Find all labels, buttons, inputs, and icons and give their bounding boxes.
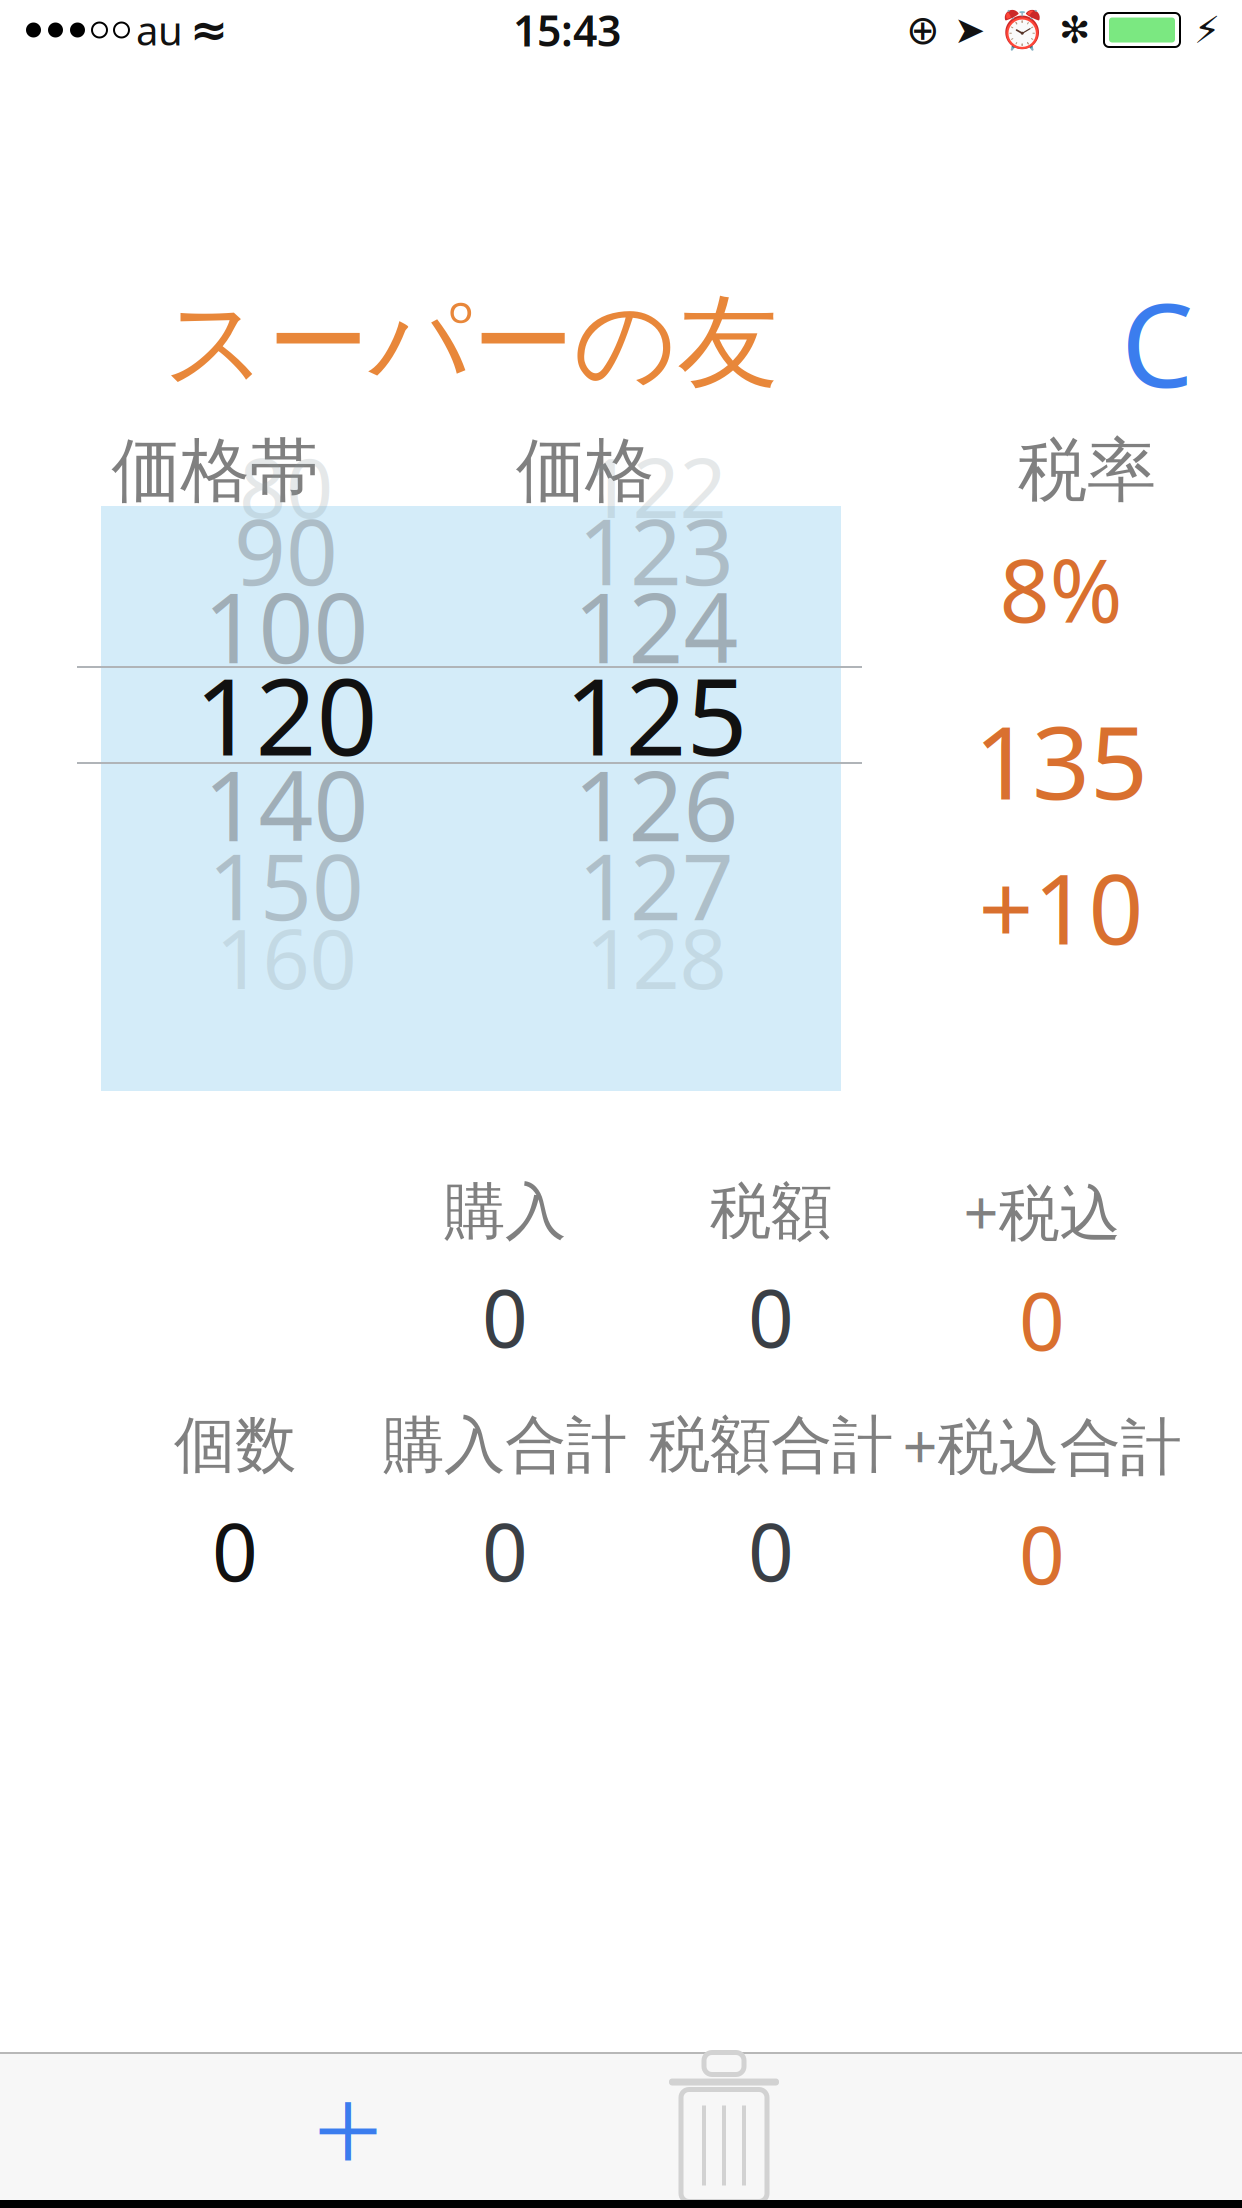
staticText: 購入合計	[383, 1408, 627, 1483]
staticText: 122	[585, 431, 726, 541]
staticText: 0	[748, 1263, 794, 1370]
staticText: ≈	[190, 4, 228, 56]
staticText: 125	[564, 643, 747, 785]
staticText: 124	[573, 562, 738, 690]
staticText: 128	[585, 902, 726, 1012]
staticText: ⚡︎	[1194, 9, 1220, 51]
staticText: 120	[194, 643, 377, 785]
staticText: +10	[978, 843, 1143, 971]
staticText: 15:43	[513, 2, 621, 58]
staticText: 0	[212, 1497, 258, 1603]
staticText: ✻	[1059, 9, 1090, 51]
staticText: +	[313, 2046, 383, 2208]
staticText: ⏰	[999, 9, 1045, 51]
staticText: C	[1121, 267, 1193, 419]
staticText: 購入	[444, 1174, 566, 1249]
staticText: 価格	[516, 428, 654, 514]
staticText: 税率	[1018, 428, 1156, 514]
staticText: +税込	[963, 1171, 1120, 1252]
staticText: 税額合計	[649, 1408, 893, 1483]
staticText: 150	[208, 825, 364, 945]
staticText: 0	[482, 1497, 528, 1603]
staticText: 140	[203, 740, 368, 868]
staticText: ⊕	[906, 7, 940, 53]
staticText: 90	[234, 490, 338, 610]
button[interactable]: Delete	[624, 2057, 824, 2197]
staticText: 8%	[999, 530, 1122, 647]
staticText: 税額	[710, 1174, 832, 1249]
staticText: 100	[203, 562, 368, 690]
staticText: 135	[974, 693, 1148, 828]
staticText: 0	[1019, 1500, 1065, 1606]
staticText: au	[136, 3, 183, 56]
staticText: 160	[215, 902, 356, 1012]
button[interactable]: Add	[248, 2057, 448, 2197]
staticText: 0	[482, 1263, 528, 1370]
staticText: スーパーの友	[163, 281, 778, 405]
staticText: 価格帯	[111, 428, 318, 514]
staticText: 0	[748, 1497, 794, 1603]
staticText: 126	[573, 740, 738, 868]
staticText: +税込合計	[902, 1405, 1181, 1486]
staticText: ➤	[954, 9, 985, 51]
staticText: 個数	[174, 1408, 296, 1483]
staticText: 80	[239, 431, 333, 541]
staticText: 0	[1019, 1266, 1065, 1373]
button[interactable]: Clear	[1072, 278, 1242, 408]
staticText: 123	[578, 490, 734, 610]
staticText: 127	[578, 825, 734, 945]
